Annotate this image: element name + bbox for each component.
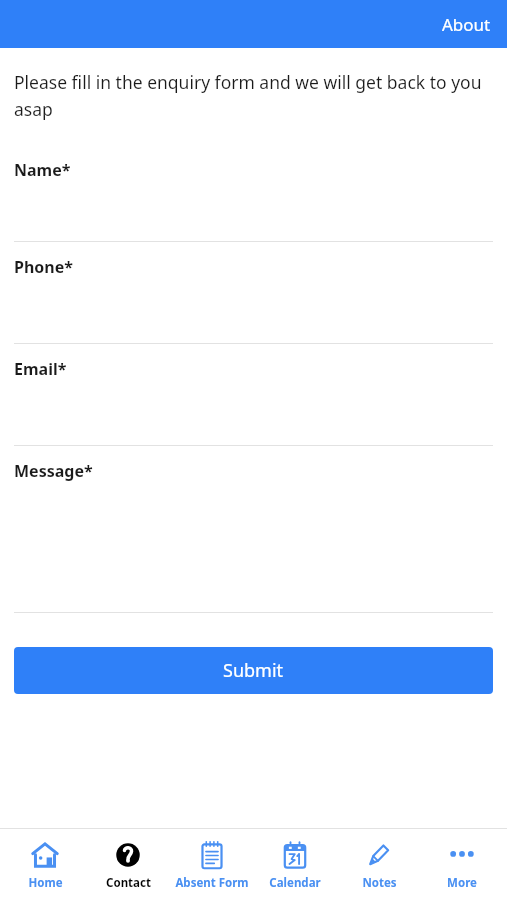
staticText: Message* <box>14 460 93 482</box>
button[interactable]: Calendar <box>256 829 334 900</box>
staticText: Submit <box>223 658 284 683</box>
staticText: Phone* <box>14 256 73 278</box>
staticText: Contact <box>106 875 151 891</box>
button[interactable]: Contact <box>89 829 167 900</box>
button[interactable]: Absent Form <box>173 829 251 900</box>
button[interactable]: More <box>423 829 501 900</box>
button[interactable]: Submit <box>14 647 493 694</box>
staticText: About <box>442 13 491 36</box>
staticText: Email* <box>14 358 67 380</box>
staticText: More <box>447 875 477 891</box>
staticText: Calendar <box>269 875 321 891</box>
button[interactable]: Message* <box>14 446 493 612</box>
button[interactable]: Email* <box>14 344 493 445</box>
button[interactable]: Name* <box>14 145 493 241</box>
staticText: Home <box>28 875 63 891</box>
staticText: Absent Form <box>175 875 249 891</box>
button[interactable]: Notes <box>340 829 418 900</box>
staticText: Notes <box>362 875 397 891</box>
button[interactable]: Phone* <box>14 242 493 343</box>
staticText: Please fill in the enquiry form and we w… <box>14 70 493 121</box>
staticText: Name* <box>14 159 71 181</box>
button[interactable]: About <box>426 5 507 44</box>
button[interactable]: Home <box>6 829 84 900</box>
